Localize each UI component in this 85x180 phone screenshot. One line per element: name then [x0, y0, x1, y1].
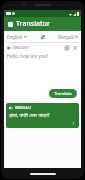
staticText: Hello, how are you?: [7, 53, 49, 59]
button[interactable]: Copy: [64, 45, 70, 51]
button[interactable]: Bengali: [47, 34, 78, 40]
staticText: হ্যালো, আপনি কেমন আছেন?: [9, 112, 50, 118]
button[interactable]: Clear: [72, 45, 78, 51]
staticText: Translate: [54, 91, 72, 96]
staticText: Bengali: [58, 34, 74, 40]
button[interactable]: Hello, how are you?: [7, 53, 78, 59]
staticText: Translator: [16, 19, 51, 29]
button[interactable]: BENGALI: [6, 103, 79, 128]
button[interactable]: ENGLISH: [7, 45, 30, 50]
button[interactable]: Swap languages: [38, 32, 47, 41]
other: App icon: [8, 22, 13, 27]
staticText: ENGLISH: [13, 45, 30, 50]
staticText: English: [7, 34, 23, 40]
button[interactable]: Translate: [49, 89, 77, 98]
button[interactable]: English: [7, 34, 38, 40]
button[interactable]: More options: [71, 121, 76, 126]
staticText: BENGALI: [15, 105, 32, 110]
button[interactable]: BENGALI: [9, 105, 32, 110]
